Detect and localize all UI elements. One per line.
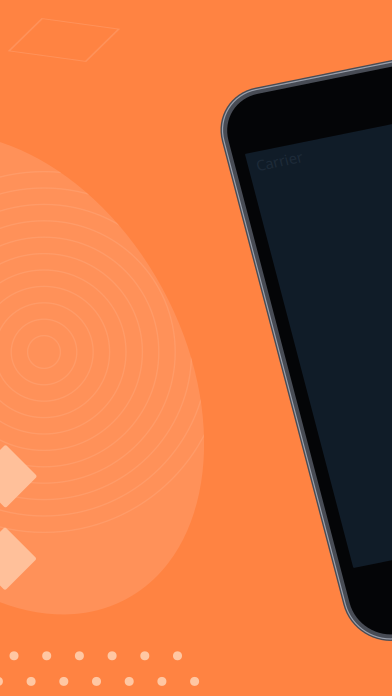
staticText: Carrier (237, 164, 284, 183)
